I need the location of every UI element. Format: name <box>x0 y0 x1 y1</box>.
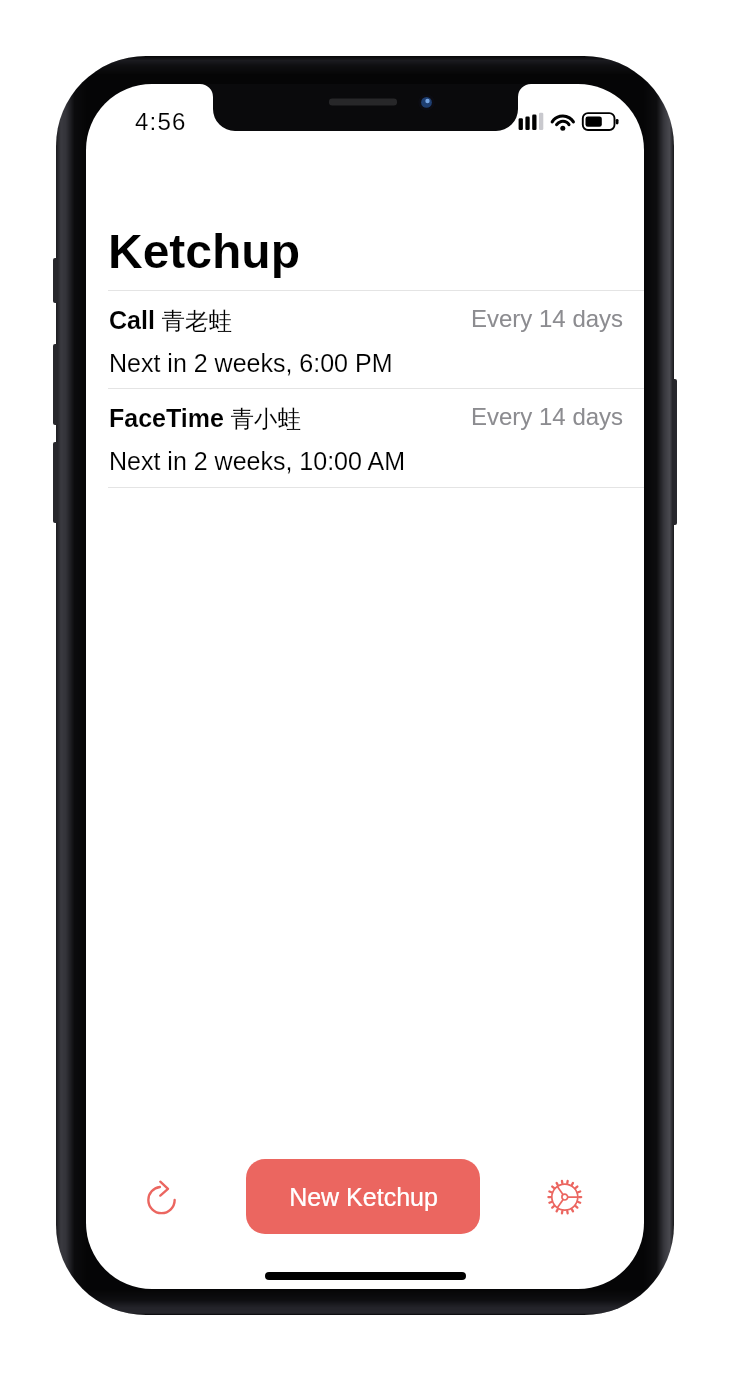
staticText: Call 青老蛙 <box>109 306 232 336</box>
button[interactable]: New Ketchup <box>246 1159 480 1234</box>
button[interactable]: Settings <box>537 1169 593 1225</box>
staticText: New Ketchup <box>289 1183 438 1211</box>
staticText: Ketchup <box>108 225 300 279</box>
staticText: Every 14 days <box>471 403 624 430</box>
staticText: 4:56 <box>135 108 187 135</box>
button[interactable]: Call 青老蛙 <box>86 290 644 388</box>
staticText: FaceTime 青小蛙 <box>109 404 301 434</box>
staticText: Every 14 days <box>471 305 624 332</box>
staticText: Next in 2 weeks, 6:00 PM <box>109 349 393 377</box>
staticText: Next in 2 weeks, 10:00 AM <box>109 447 405 475</box>
button[interactable]: FaceTime 青小蛙 <box>86 388 644 486</box>
button[interactable]: Refresh <box>133 1172 190 1229</box>
